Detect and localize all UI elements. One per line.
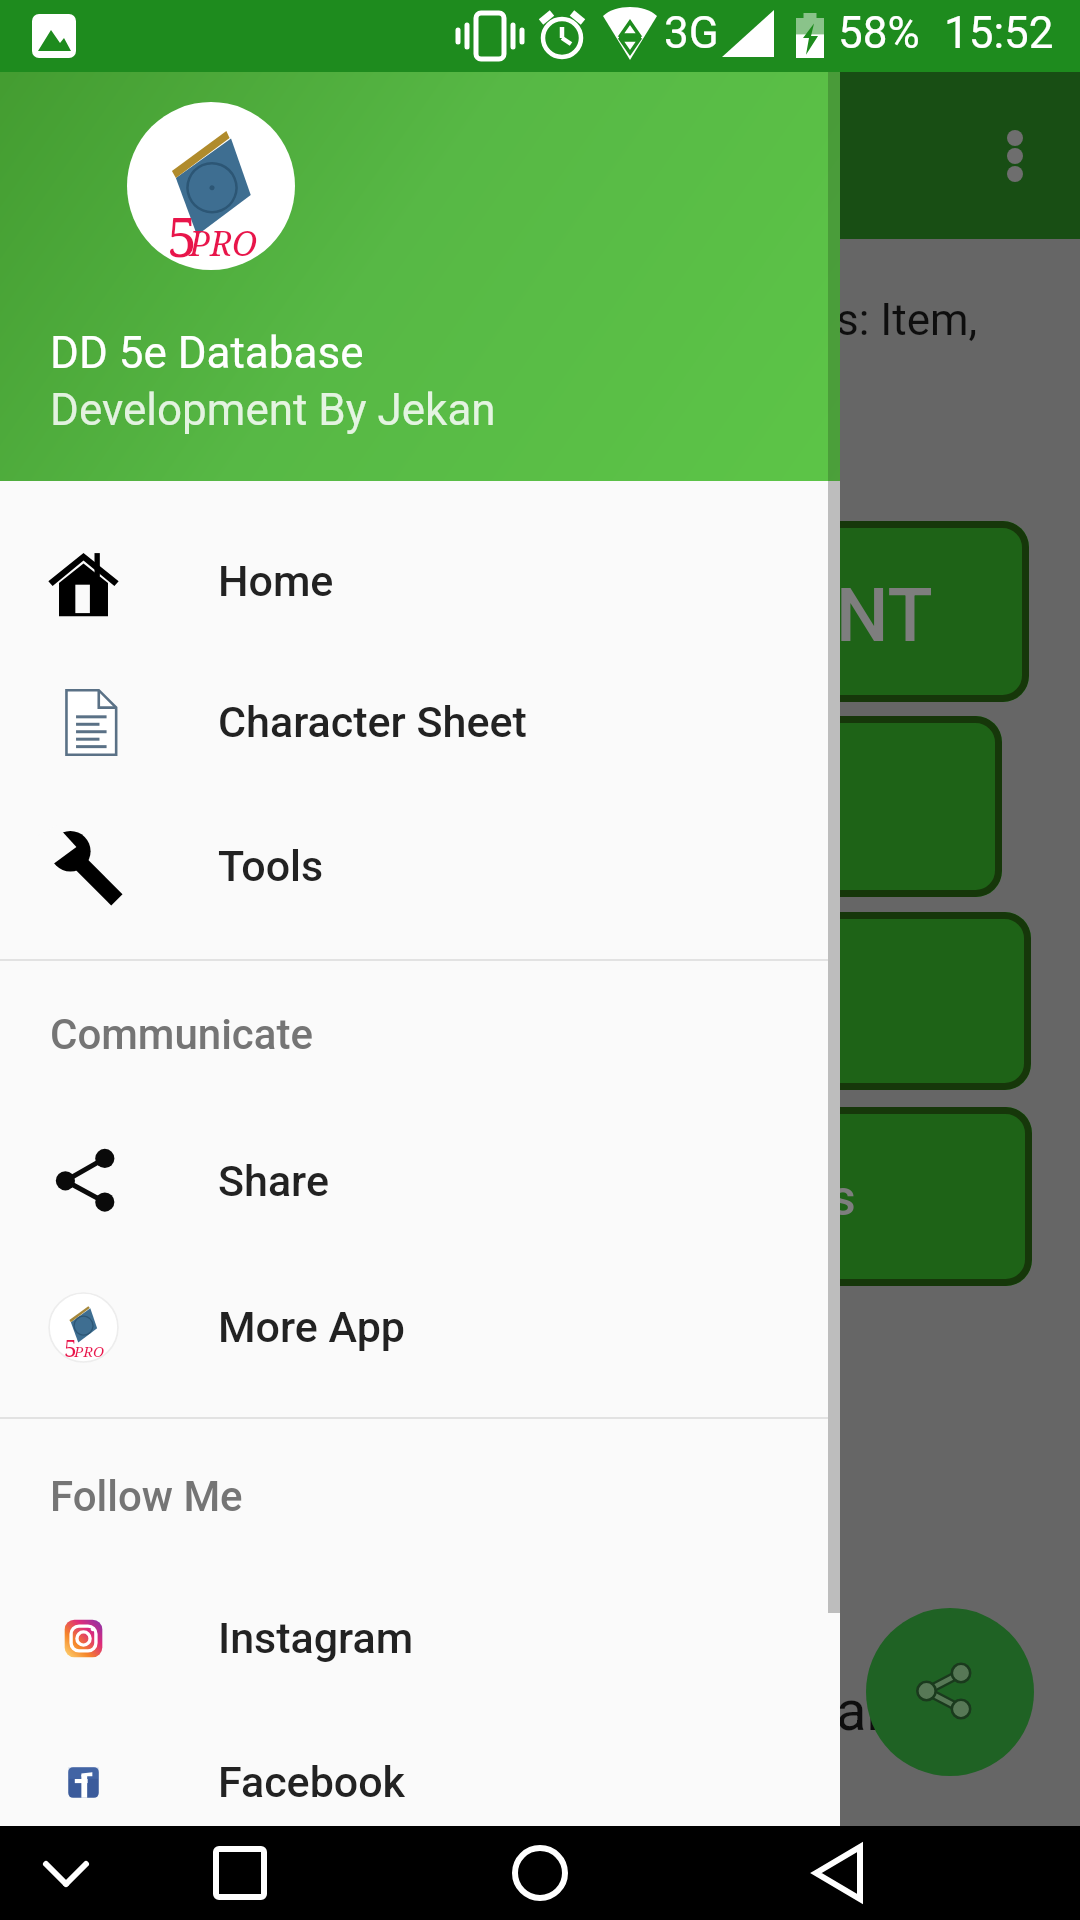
staticText: Home: [218, 556, 334, 606]
button[interactable]: Home: [0, 509, 828, 653]
staticText: 15:52: [944, 7, 1054, 59]
staticText: Character Sheet: [218, 697, 527, 747]
staticText: ar: [836, 1678, 886, 1744]
button[interactable]: [690, 912, 1031, 1090]
staticText: Facebook: [218, 1757, 406, 1807]
button[interactable]: Character Sheet: [0, 650, 828, 794]
staticText: Follow Me: [50, 1472, 243, 1521]
button[interactable]: More options: [982, 122, 1048, 188]
button[interactable]: 5: [0, 1255, 828, 1399]
staticText: 5: [64, 1332, 77, 1363]
button[interactable]: [690, 521, 1029, 702]
staticText: Communicate: [50, 1010, 313, 1059]
button[interactable]: [690, 1107, 1032, 1286]
staticText: Development By Jekan: [50, 384, 496, 436]
staticText: 3G: [664, 7, 719, 59]
staticText: NT: [836, 572, 933, 659]
button[interactable]: Recent apps: [193, 1826, 287, 1920]
button[interactable]: [690, 716, 1002, 897]
staticText: Instagram: [218, 1613, 414, 1663]
staticText: PRO: [74, 1341, 105, 1361]
staticText: 5: [167, 199, 198, 270]
button[interactable]: Share: [866, 1608, 1034, 1776]
staticText: Share: [218, 1156, 329, 1206]
button[interactable]: Facebook: [0, 1710, 828, 1854]
staticText: s: Item,: [836, 294, 978, 346]
staticText: Tools: [218, 841, 324, 891]
button[interactable]: Home: [493, 1826, 587, 1920]
button[interactable]: Back: [793, 1826, 887, 1920]
button[interactable]: Instagram: [0, 1566, 828, 1710]
button[interactable]: Tools: [0, 794, 828, 938]
staticText: 58%: [838, 7, 920, 59]
button[interactable]: Share: [0, 1109, 828, 1253]
staticText: s: [830, 1169, 856, 1228]
staticText: DD 5e Database: [50, 327, 364, 379]
button[interactable]: Collapse keyboard: [19, 1826, 113, 1920]
staticText: PRO: [189, 220, 258, 266]
staticText: More App: [218, 1302, 405, 1352]
